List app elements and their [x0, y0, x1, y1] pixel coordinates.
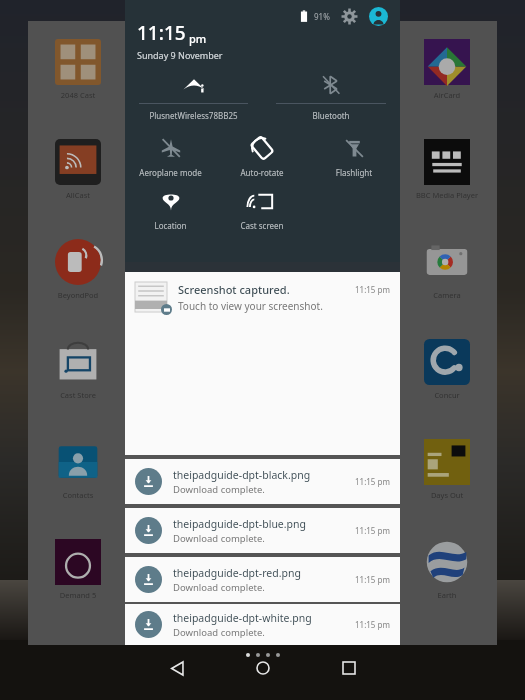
button[interactable]: Aeroplane mode [125, 135, 216, 178]
staticText: Aeroplane mode [129, 167, 212, 178]
staticText: theipadguide-dpt-red.png [173, 566, 301, 580]
staticText: PlusnetWireless78BB25 [139, 110, 248, 121]
staticText: Flashlight [312, 167, 396, 178]
staticText: 11:15 pm [355, 619, 390, 630]
staticText: 11:15 [137, 20, 186, 46]
staticText: theipadguide-dpt-white.png [173, 611, 312, 625]
staticText: Camera [397, 290, 497, 300]
staticText: AirCard [397, 90, 497, 100]
staticText: Bluetooth [276, 110, 386, 121]
button[interactable]: Bluetooth [262, 72, 400, 121]
staticText: BeyondPod [28, 290, 128, 300]
staticText: 11:15 pm [355, 574, 390, 585]
staticText: Demand 5 [28, 590, 128, 600]
button[interactable]: AllCast [28, 139, 128, 200]
staticText: AllCast [28, 190, 128, 200]
staticText: Concur [397, 390, 497, 400]
staticText: theipadguide-dpt-black.png [173, 468, 311, 482]
staticText: 2048 Cast [28, 90, 128, 100]
staticText: Download complete. [173, 532, 265, 545]
button[interactable]: Settings [339, 6, 359, 26]
staticText: Days Out [397, 490, 497, 500]
staticText: Earth [397, 590, 497, 600]
staticText: theipadguide-dpt-blue.png [173, 517, 307, 531]
button[interactable]: Cast Store [28, 339, 128, 400]
button[interactable]: Camera [397, 239, 497, 300]
staticText: 91% [314, 11, 330, 22]
button[interactable]: Days Out [397, 439, 497, 500]
button[interactable]: Screenshot captured. [125, 272, 400, 455]
staticText: Cast screen [220, 220, 304, 231]
staticText: Location [129, 220, 212, 231]
staticText: BBC Media Player [397, 190, 497, 200]
button[interactable]: User profile [368, 6, 388, 26]
button[interactable]: Auto-rotate [216, 135, 308, 178]
staticText: Download complete. [173, 626, 265, 639]
button[interactable]: Home [240, 645, 286, 691]
staticText: Touch to view your screenshot. [178, 299, 323, 313]
staticText: Cast Store [28, 390, 128, 400]
button[interactable]: theipadguide-dpt-red.png [125, 557, 400, 602]
button[interactable]: Flashlight [308, 135, 400, 178]
staticText: Screenshot captured. [178, 282, 290, 297]
button[interactable]: Demand 5 [28, 539, 128, 600]
button[interactable]: Contacts [28, 439, 128, 500]
button[interactable]: theipadguide-dpt-white.png [125, 604, 400, 645]
staticText: Download complete. [173, 581, 265, 594]
staticText: 11:15 pm [355, 284, 390, 295]
button[interactable]: Concur [397, 339, 497, 400]
button[interactable]: theipadguide-dpt-blue.png [125, 508, 400, 553]
button[interactable]: Back [154, 645, 200, 691]
button[interactable]: Earth [397, 539, 497, 600]
button[interactable]: PlusnetWireless78BB25 [125, 72, 262, 121]
button[interactable]: BeyondPod [28, 239, 128, 300]
button[interactable]: Cast screen [216, 188, 308, 231]
button[interactable]: theipadguide-dpt-black.png [125, 459, 400, 504]
button[interactable]: BBC Media Player [397, 139, 497, 200]
staticText: Auto-rotate [220, 167, 304, 178]
staticText: Contacts [28, 490, 128, 500]
staticText: 11:15 pm [355, 476, 390, 487]
button[interactable]: Location [125, 188, 216, 231]
staticText: 11:15 pm [355, 525, 390, 536]
staticText: Download complete. [173, 483, 265, 496]
button[interactable]: Recent apps [326, 645, 372, 691]
button[interactable]: AirCard [397, 39, 497, 100]
button[interactable]: 2048 Cast [28, 39, 128, 100]
staticText: Sunday 9 November [137, 49, 223, 61]
staticText: pm [189, 31, 207, 46]
